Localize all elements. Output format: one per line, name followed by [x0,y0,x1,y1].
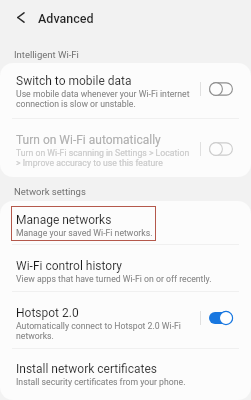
button[interactable]: Turn on Wi-Fi automatically [209,142,233,156]
button[interactable]: Back [8,5,32,29]
button[interactable]: Manage networks [0,201,251,245]
button[interactable]: Hotspot 2.0 [209,311,233,325]
button[interactable]: Switch to mobile data [209,82,233,96]
staticText: Hotspot 2.0 [16,306,79,320]
staticText: > Improve accuracy to use this feature [16,158,163,168]
staticText: Manage networks [16,213,112,227]
button[interactable]: Hotspot 2.0 [0,292,251,349]
staticText: Manage your saved Wi-Fi networks. [16,228,153,238]
staticText: View apps that have turned Wi-Fi on or o… [16,274,212,284]
button[interactable]: Install network certificates [0,349,251,400]
staticText: Install network certificates [16,362,158,376]
staticText: Use mobile data whenever your Wi-Fi inte… [16,89,190,99]
button[interactable]: Switch to mobile data [0,63,251,119]
staticText: Network settings [14,186,86,197]
staticText: Automatically connect to Hotspot 2.0 Wi-… [16,321,181,331]
button[interactable]: Turn on Wi-Fi automatically [0,119,251,177]
staticText: networks. [16,331,54,341]
staticText: Advanced [38,11,94,26]
staticText: Turn on Wi-Fi automatically [16,133,161,147]
button[interactable]: Wi-Fi control history [0,245,251,292]
staticText: Wi-Fi control history [16,259,122,273]
staticText: Intelligent Wi-Fi [14,49,79,60]
staticText: Install security certificates from your … [16,377,186,387]
staticText: Turn on Wi-Fi scanning in Settings > Loc… [16,148,190,158]
staticText: Switch to mobile data [16,74,132,88]
staticText: connection is slow or unstable. [16,99,136,109]
